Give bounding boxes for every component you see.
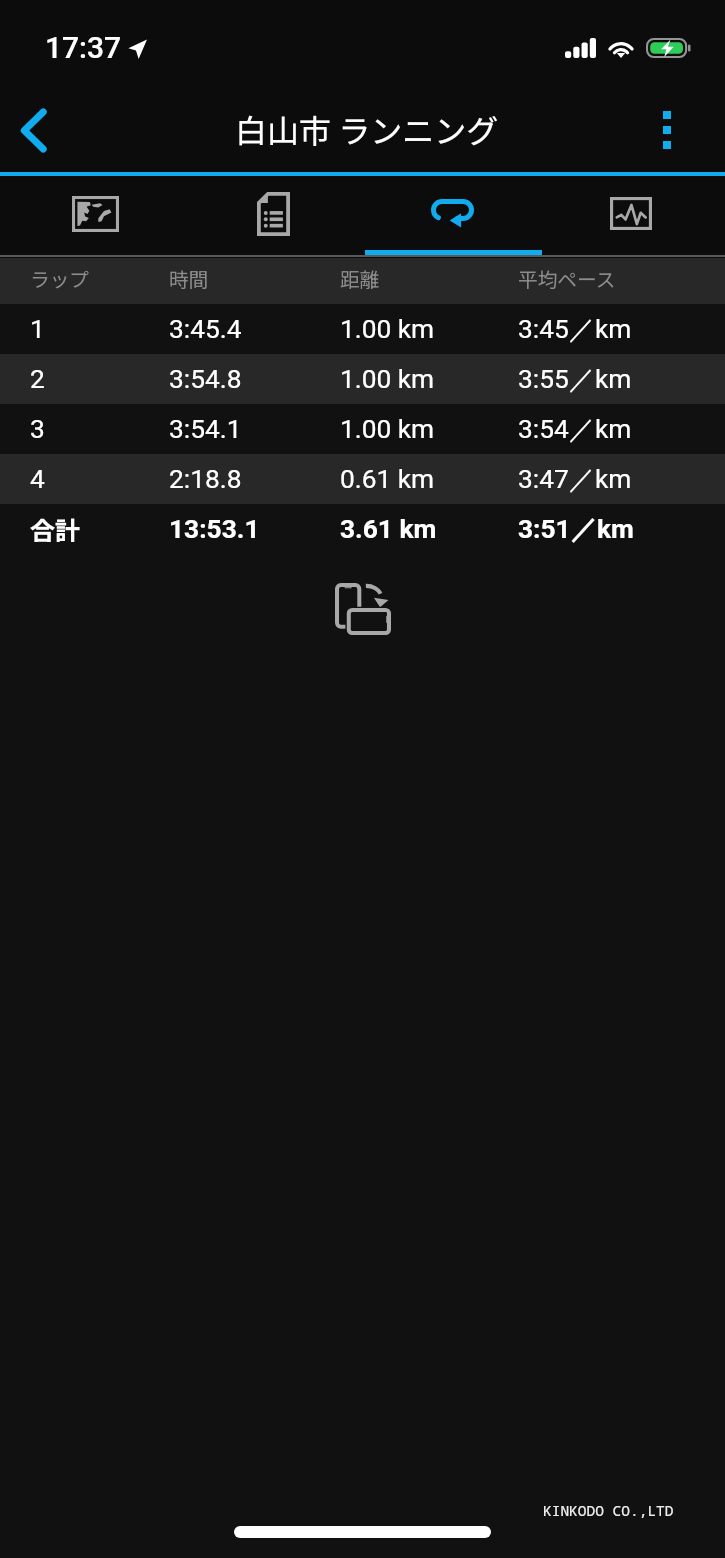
staticText: 1 (30, 314, 45, 345)
staticText: 平均ペース (518, 264, 616, 293)
button[interactable]: 1 (0, 304, 725, 354)
button[interactable]: More options (609, 88, 725, 172)
staticText: 17:37 (45, 30, 122, 65)
staticText: 3.61 km (340, 514, 437, 545)
staticText: 3 (30, 414, 45, 445)
staticText: 3:54／km (518, 413, 632, 446)
staticText: 3:51／km (518, 513, 634, 546)
staticText: 3:54.8 (169, 364, 242, 395)
button[interactable]: Laps (363, 176, 544, 255)
staticText: 1.00 km (340, 364, 435, 395)
button[interactable]: Details (182, 176, 363, 255)
staticText: 距離 (340, 264, 380, 293)
staticText: 3:55／km (518, 363, 632, 396)
button[interactable]: Rotate screen (327, 573, 399, 645)
staticText: 合計 (30, 511, 81, 547)
button[interactable]: 合計 (0, 504, 725, 554)
staticText: 1.00 km (340, 314, 435, 345)
button[interactable]: 4 (0, 454, 725, 504)
button[interactable]: Back (0, 88, 67, 172)
button[interactable]: Map (0, 176, 182, 255)
staticText: 3:45.4 (169, 314, 242, 345)
staticText: 白山市 ランニング (235, 106, 499, 152)
staticText: 時間 (169, 264, 209, 293)
button[interactable]: Graph (544, 176, 725, 255)
button[interactable]: 3 (0, 404, 725, 454)
staticText: 2 (30, 364, 45, 395)
staticText: 1.00 km (340, 414, 435, 445)
staticText: 4 (30, 464, 45, 495)
button[interactable]: 2 (0, 354, 725, 404)
staticText: ラップ (30, 264, 90, 293)
staticText: 3:54.1 (169, 414, 242, 445)
staticText: 3:47／km (518, 463, 632, 496)
staticText: 2:18.8 (169, 464, 242, 495)
staticText: 0.61 km (340, 464, 435, 495)
staticText: 3:45／km (518, 313, 632, 346)
staticText: 13:53.1 (169, 514, 260, 545)
staticText: KINKODO CO.,LTD (543, 1500, 674, 1520)
